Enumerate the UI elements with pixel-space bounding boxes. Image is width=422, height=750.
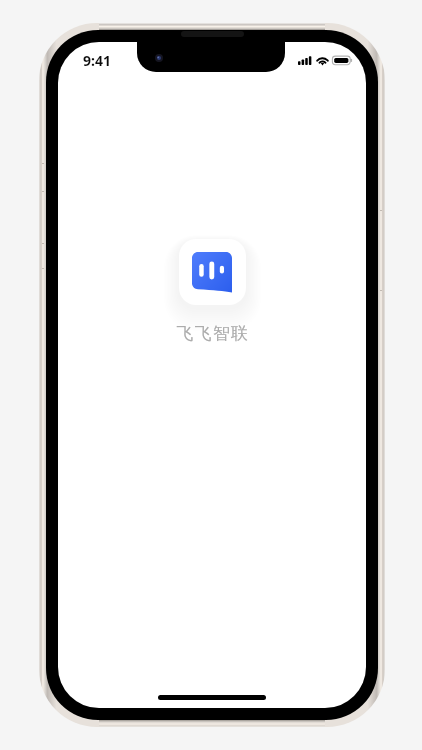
other: Home indicator xyxy=(158,695,266,700)
staticText: 飞飞智联 xyxy=(176,323,250,344)
button[interactable]: 飞飞智联 app icon xyxy=(179,239,246,305)
button[interactable]: 飞飞智联 xyxy=(176,323,250,344)
staticText: 9:41 xyxy=(83,51,111,70)
other: Signal, Wi-Fi and battery status xyxy=(298,56,351,65)
